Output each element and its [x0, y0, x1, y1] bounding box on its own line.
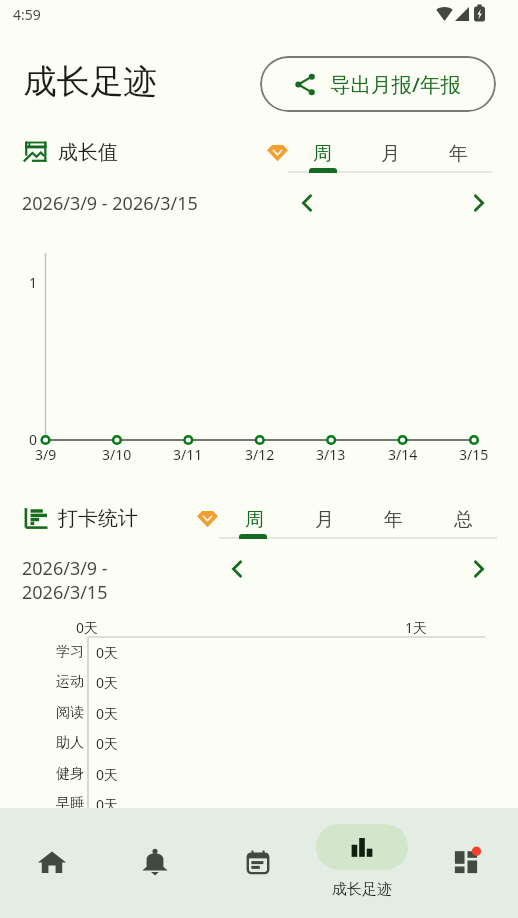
button[interactable]: 周: [219, 503, 289, 537]
staticText: 0天: [96, 704, 119, 723]
staticText: 学习: [56, 643, 84, 661]
button[interactable]: 周: [288, 137, 356, 171]
button[interactable]: Previous week: [289, 185, 325, 221]
button[interactable]: Calendar: [206, 808, 310, 918]
staticText: 4:59: [13, 5, 41, 24]
staticText: 成长足迹: [332, 880, 392, 899]
staticText: 成长足迹: [23, 61, 157, 103]
button[interactable]: Notifications: [103, 808, 206, 918]
staticText: 打卡统计: [58, 506, 138, 531]
staticText: 3/11: [173, 445, 203, 464]
staticText: 月: [381, 142, 400, 166]
staticText: 周: [313, 142, 332, 166]
staticText: 0: [29, 430, 38, 449]
staticText: 成长值: [58, 140, 118, 165]
button[interactable]: 年: [424, 137, 492, 171]
staticText: 早睡: [56, 795, 84, 813]
staticText: 助人: [56, 734, 84, 752]
button[interactable]: Previous period: [219, 551, 255, 587]
staticText: 0天: [76, 618, 99, 637]
staticText: 1天: [405, 618, 428, 637]
staticText: 月: [315, 508, 334, 532]
staticText: 运动: [56, 673, 84, 691]
button[interactable]: 月: [356, 137, 424, 171]
button[interactable]: 总: [428, 503, 498, 537]
staticText: 0天: [96, 673, 119, 692]
button[interactable]: Home: [0, 808, 103, 918]
staticText: 总: [454, 508, 473, 532]
button[interactable]: Next period: [461, 551, 497, 587]
staticText: 2026/3/9 - 2026/3/15: [22, 556, 108, 604]
staticText: 导出月报/年报: [330, 70, 461, 98]
staticText: 年: [384, 508, 403, 532]
staticText: 周: [245, 508, 264, 532]
staticText: 0天: [96, 765, 119, 784]
button[interactable]: 月: [289, 503, 359, 537]
staticText: 健身: [56, 765, 84, 783]
staticText: 3/13: [316, 445, 346, 464]
staticText: 1: [29, 273, 38, 292]
staticText: 0天: [96, 643, 119, 662]
staticText: 3/12: [245, 445, 275, 464]
staticText: 3/9: [35, 445, 57, 464]
button[interactable]: 成长足迹: [310, 808, 414, 918]
button[interactable]: Dashboard: [414, 808, 518, 918]
staticText: 0天: [96, 795, 119, 814]
button[interactable]: Next week: [461, 185, 497, 221]
staticText: 3/15: [459, 445, 489, 464]
staticText: 0天: [96, 734, 119, 753]
staticText: 年: [449, 142, 468, 166]
staticText: 3/14: [388, 445, 418, 464]
staticText: 阅读: [56, 704, 84, 722]
staticText: 3/10: [102, 445, 132, 464]
staticText: 2026/3/9 - 2026/3/15: [22, 191, 198, 216]
button[interactable]: 导出月报/年报: [260, 56, 496, 112]
button[interactable]: 年: [358, 503, 428, 537]
